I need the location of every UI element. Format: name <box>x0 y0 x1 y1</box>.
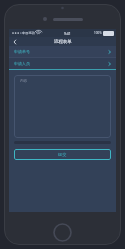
button[interactable]: 申请单号 <box>9 46 116 57</box>
staticText: 中国移动 <box>22 31 35 35</box>
staticText: 流程表单 <box>54 39 72 45</box>
staticText: 提交 <box>58 152 67 157</box>
staticText: 申请人员 <box>14 61 30 66</box>
button[interactable]: 申请人员 <box>9 58 116 69</box>
button[interactable]: 提交 <box>14 149 111 160</box>
staticText: 申请单号 <box>14 49 30 54</box>
staticText: 100% <box>94 31 102 35</box>
staticText: 9:41 <box>64 31 71 36</box>
button[interactable]: 内容 <box>14 75 111 138</box>
staticText: 内容 <box>20 79 28 84</box>
button[interactable]: Back <box>9 37 21 46</box>
